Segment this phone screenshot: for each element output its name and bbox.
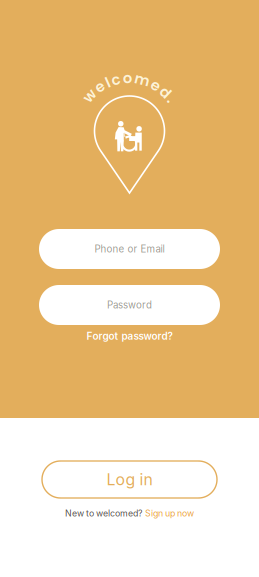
staticText: New to welcomed? xyxy=(65,508,142,519)
staticText: w xyxy=(83,86,95,106)
button[interactable]: Password xyxy=(39,285,220,325)
staticText: Phone or Email xyxy=(94,243,164,255)
staticText: m xyxy=(135,69,150,90)
staticText: Sign up now xyxy=(145,508,194,519)
staticText: e xyxy=(151,75,160,95)
staticText: d xyxy=(160,82,170,103)
staticText: l xyxy=(106,72,110,93)
staticText: . xyxy=(169,89,173,110)
staticText: o xyxy=(123,68,132,88)
button[interactable]: Sign up now xyxy=(145,508,194,519)
staticText: c xyxy=(111,69,120,90)
staticText: e xyxy=(95,77,104,97)
staticText: Log in xyxy=(106,470,152,489)
staticText: Password xyxy=(107,299,152,311)
button[interactable]: Forgot password? xyxy=(86,328,172,344)
button[interactable]: Phone or Email xyxy=(39,229,220,269)
button[interactable]: Log in xyxy=(42,461,217,498)
staticText: Forgot password? xyxy=(86,330,172,342)
